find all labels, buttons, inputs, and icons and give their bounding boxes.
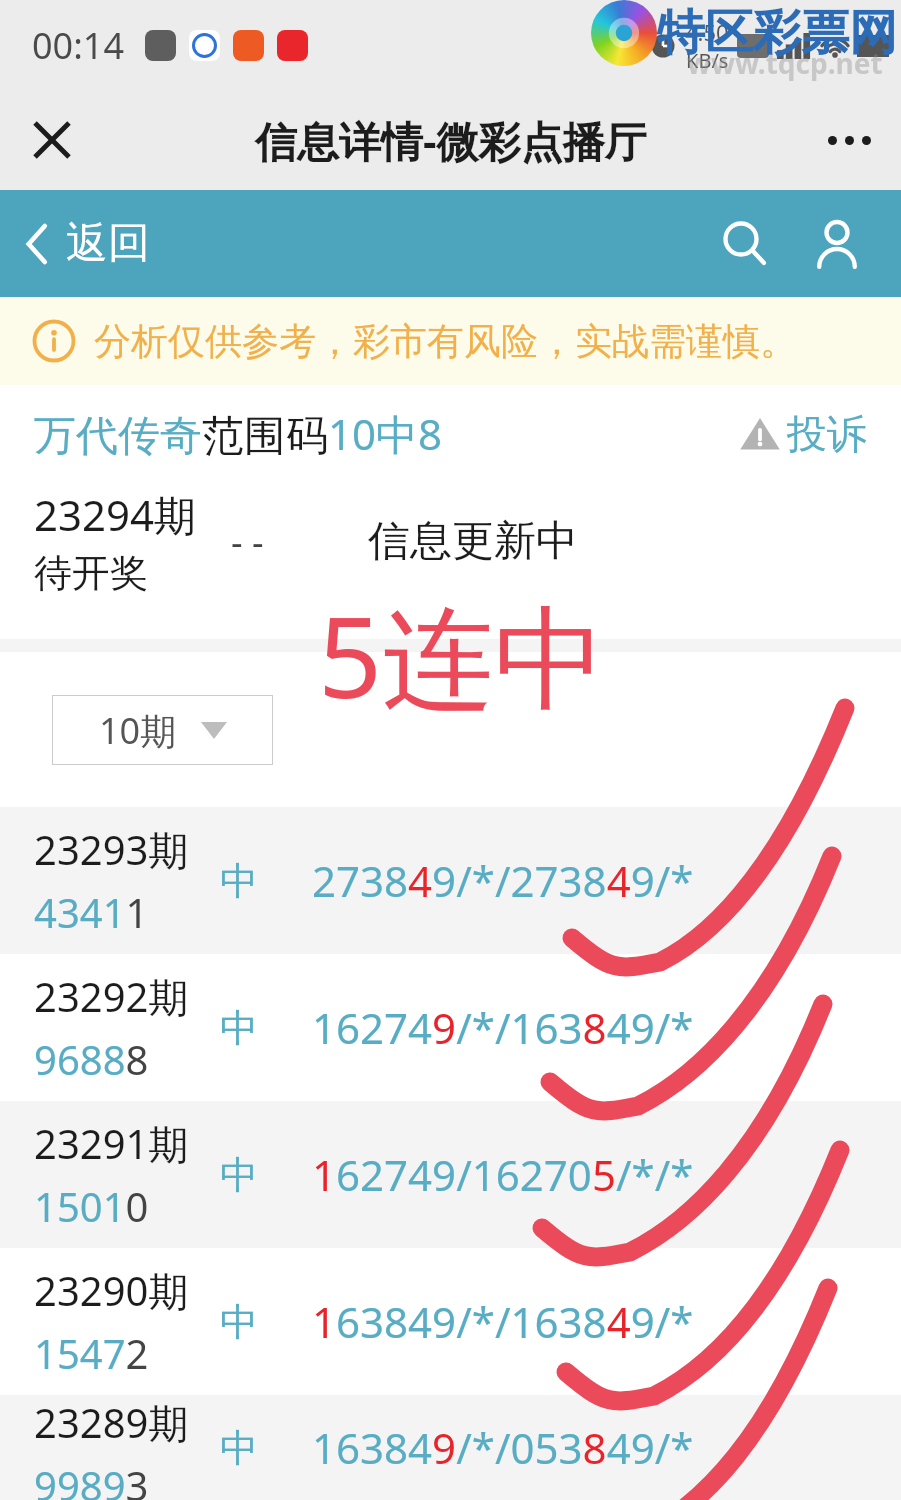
staticText: KB/s (686, 47, 729, 74)
staticText: 163849/*/163849/* (312, 1293, 694, 1350)
staticText: 投诉 (787, 409, 867, 459)
button[interactable]: 投诉 (739, 409, 867, 459)
staticText: 信息更新中 (368, 515, 578, 568)
staticText: 10期 (99, 706, 177, 755)
staticText: 162749/*/163849/* (312, 999, 694, 1056)
staticText: 163849/*/053849/* (312, 1419, 694, 1476)
staticText: 返回 (66, 217, 150, 270)
staticText: 162749/162705/*/* (312, 1146, 694, 1203)
staticText: 273849/*/273849/* (312, 852, 694, 909)
staticText: 15010 (34, 1179, 149, 1233)
staticText: 96888 (34, 1032, 149, 1086)
button[interactable]: Profile (799, 206, 875, 282)
staticText: 中 (220, 1298, 258, 1346)
staticText: 43411 (34, 885, 149, 939)
staticText: 23294期 (34, 486, 197, 543)
staticText: 23292期 (34, 969, 189, 1024)
staticText: 99893 (34, 1458, 149, 1500)
button[interactable]: Close (20, 108, 84, 172)
staticText: 23293期 (34, 822, 189, 877)
button[interactable]: Search (707, 206, 783, 282)
button[interactable]: More options (817, 108, 881, 172)
button[interactable]: 23289期 (0, 1395, 901, 1500)
staticText: 00:14 (32, 21, 125, 70)
staticText: 中 (220, 1004, 258, 1052)
button[interactable]: 返回 (24, 217, 162, 270)
staticText: 23291期 (34, 1116, 189, 1171)
staticText: 分析仅供参考，彩市有风险，实战需谨慎。 (94, 318, 797, 365)
button[interactable]: 23292期 (0, 954, 901, 1101)
staticText: 信息详情-微彩点播厅 (255, 112, 647, 169)
staticText: 中 (220, 1151, 258, 1199)
staticText: 23289期 (34, 1395, 189, 1450)
staticText: 万代传奇范围码10中8 (34, 405, 443, 462)
button[interactable]: 23291期 (0, 1101, 901, 1248)
staticText: 待开奖 (34, 549, 148, 597)
staticText: 4.50 (685, 17, 729, 47)
button[interactable]: 23293期 (0, 807, 901, 954)
staticText: 中 (220, 857, 258, 905)
staticText: 中 (220, 1424, 258, 1472)
staticText: 23290期 (34, 1263, 189, 1318)
staticText: 特区彩票网 (657, 3, 897, 63)
staticText: www.tqcp.net (687, 44, 883, 82)
staticText: - - (231, 517, 264, 566)
button[interactable]: 23290期 (0, 1248, 901, 1395)
staticText: 15472 (34, 1326, 149, 1380)
staticText: 5连中 (318, 578, 607, 731)
button[interactable]: 10期 (52, 695, 273, 765)
